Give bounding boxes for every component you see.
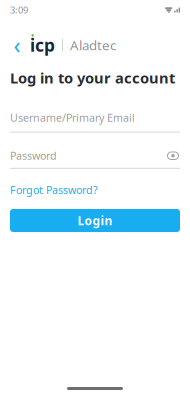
- staticText: Forgot Password?: [10, 183, 98, 197]
- button[interactable]: Forgot Password?: [10, 181, 98, 199]
- staticText: 3:09: [10, 4, 28, 16]
- button[interactable]: Show password: [166, 150, 180, 162]
- button[interactable]: Login: [10, 209, 180, 232]
- button[interactable]: Back: [8, 35, 26, 55]
- staticText: icp: [30, 33, 55, 56]
- staticText: Login: [77, 212, 112, 228]
- staticText: Password: [10, 149, 57, 163]
- staticText: Username/Primary Email: [10, 110, 135, 125]
- staticText: Log in to your account: [10, 68, 175, 87]
- staticText: ‹: [13, 30, 20, 60]
- staticText: Aladtec: [70, 36, 116, 54]
